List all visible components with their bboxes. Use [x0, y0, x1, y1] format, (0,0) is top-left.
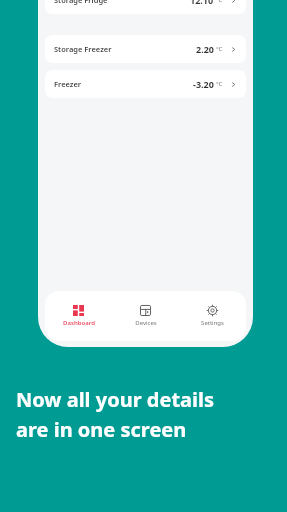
staticText: °C: [216, 80, 223, 88]
staticText: Now all your details: [16, 386, 215, 413]
staticText: 2.20: [196, 43, 214, 55]
staticText: °C: [216, 0, 223, 4]
button[interactable]: Devices: [112, 291, 179, 341]
button[interactable]: Freezer: [45, 70, 246, 98]
button[interactable]: Dashboard: [45, 291, 112, 341]
staticText: Storage Freezer: [54, 44, 112, 54]
staticText: 12.10: [190, 0, 214, 6]
staticText: Dashboard: [63, 319, 95, 327]
staticText: Devices: [135, 319, 157, 327]
staticText: Storage Fridge: [54, 0, 108, 5]
staticText: Freezer: [54, 79, 82, 89]
button[interactable]: Settings: [179, 291, 246, 341]
button[interactable]: Storage Fridge: [45, 0, 246, 14]
staticText: -3.20: [193, 78, 214, 90]
staticText: °C: [216, 45, 223, 53]
staticText: are in one screen: [16, 416, 187, 443]
staticText: Settings: [201, 319, 224, 327]
button[interactable]: Storage Freezer: [45, 35, 246, 63]
